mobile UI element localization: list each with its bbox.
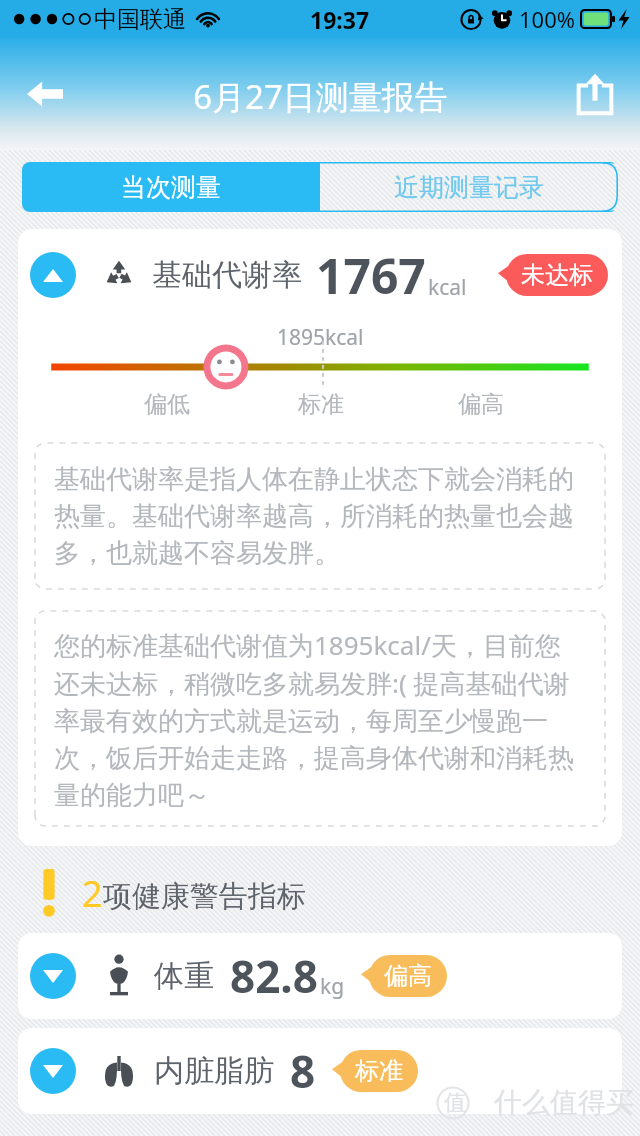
staticText: 偏高 [458, 390, 504, 419]
staticText: 基础代谢率是指人体在静止状态下就会消耗的热量。基础代谢率越高，所消耗的热量也会越… [54, 463, 586, 569]
staticText: 当次测量 [121, 172, 221, 203]
button[interactable]: 近期测量记录 [320, 162, 618, 212]
staticText: 1895kcal [277, 323, 364, 352]
staticText: 近期测量记录 [394, 172, 544, 203]
staticText: 您的标准基础代谢值为1895kcal/天，目前您还未达标，稍微吃多就易发胖:( … [54, 627, 586, 811]
staticText: 偏低 [144, 390, 190, 419]
button[interactable]: 未达标 [521, 260, 593, 290]
staticText: 2 [82, 869, 103, 918]
staticText: 体重 [154, 957, 214, 995]
staticText: 什么值得买 [494, 1085, 634, 1120]
staticText: 中国联通 [94, 5, 186, 34]
other: Expand [30, 953, 76, 999]
staticText: 标准 [298, 390, 344, 419]
other: Expand [30, 1048, 76, 1094]
staticText: 82.8 [230, 946, 318, 1006]
button[interactable]: 偏高 [384, 961, 432, 991]
button[interactable]: 标准 [355, 1056, 403, 1086]
staticText: 偏高 [384, 961, 432, 991]
staticText: 19:37 [310, 4, 370, 35]
staticText: 标准 [355, 1056, 403, 1086]
staticText: 项健康警告指标 [103, 878, 306, 915]
button[interactable]: Back [14, 63, 76, 125]
staticText: 未达标 [521, 260, 593, 290]
staticText: 1767 [316, 243, 426, 308]
staticText: 基础代谢率 [152, 256, 302, 294]
button[interactable]: Collapse [18, 229, 622, 321]
staticText: 值 [444, 1089, 466, 1117]
button[interactable]: Expand [18, 1028, 622, 1114]
staticText: 8 [290, 1041, 316, 1101]
staticText: 100% [519, 4, 576, 34]
staticText: 6月27日测量报告 [193, 74, 448, 119]
staticText: kg [320, 972, 345, 1001]
button[interactable]: Expand [18, 933, 622, 1019]
button[interactable]: Share [564, 63, 626, 125]
button[interactable]: 当次测量 [22, 162, 320, 212]
staticText: kcal [428, 273, 467, 302]
other: Collapse [30, 252, 76, 298]
staticText: 内脏脂肪 [154, 1052, 274, 1090]
